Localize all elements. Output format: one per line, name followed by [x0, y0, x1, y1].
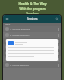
- staticText: Health & The Way: [18, 2, 47, 6]
- button[interactable]: Menu: [5, 17, 9, 21]
- button[interactable]: 5. Deep Rest Flow: [3, 50, 61, 56]
- staticText: 2. Guided Relaxation: [10, 34, 30, 37]
- staticText: 1. Morning Breathing: [10, 28, 31, 31]
- staticText: 5. Deep Rest Flow: [10, 52, 27, 55]
- staticText: 7. Closing Reflection: [10, 64, 29, 67]
- staticText: With the program: [19, 7, 46, 11]
- staticText: Sessions: [27, 17, 38, 21]
- button[interactable]: 4. Evening Practice: [3, 44, 61, 50]
- staticText: Transform: [26, 12, 39, 16]
- button[interactable]: 7. Closing Reflection: [3, 62, 61, 68]
- staticText: 3. Body Scan Session: [10, 40, 30, 43]
- button[interactable]: 1. Morning Breathing: [3, 26, 61, 32]
- button[interactable]: Search: [55, 17, 59, 21]
- staticText: Today: [5, 23, 11, 26]
- button[interactable]: 3. Body Scan Session: [3, 38, 61, 44]
- button[interactable]: 2. Guided Relaxation: [3, 32, 61, 38]
- staticText: 4. Evening Practice: [10, 46, 28, 49]
- button[interactable]: 6. Mindful Moments: [3, 56, 61, 62]
